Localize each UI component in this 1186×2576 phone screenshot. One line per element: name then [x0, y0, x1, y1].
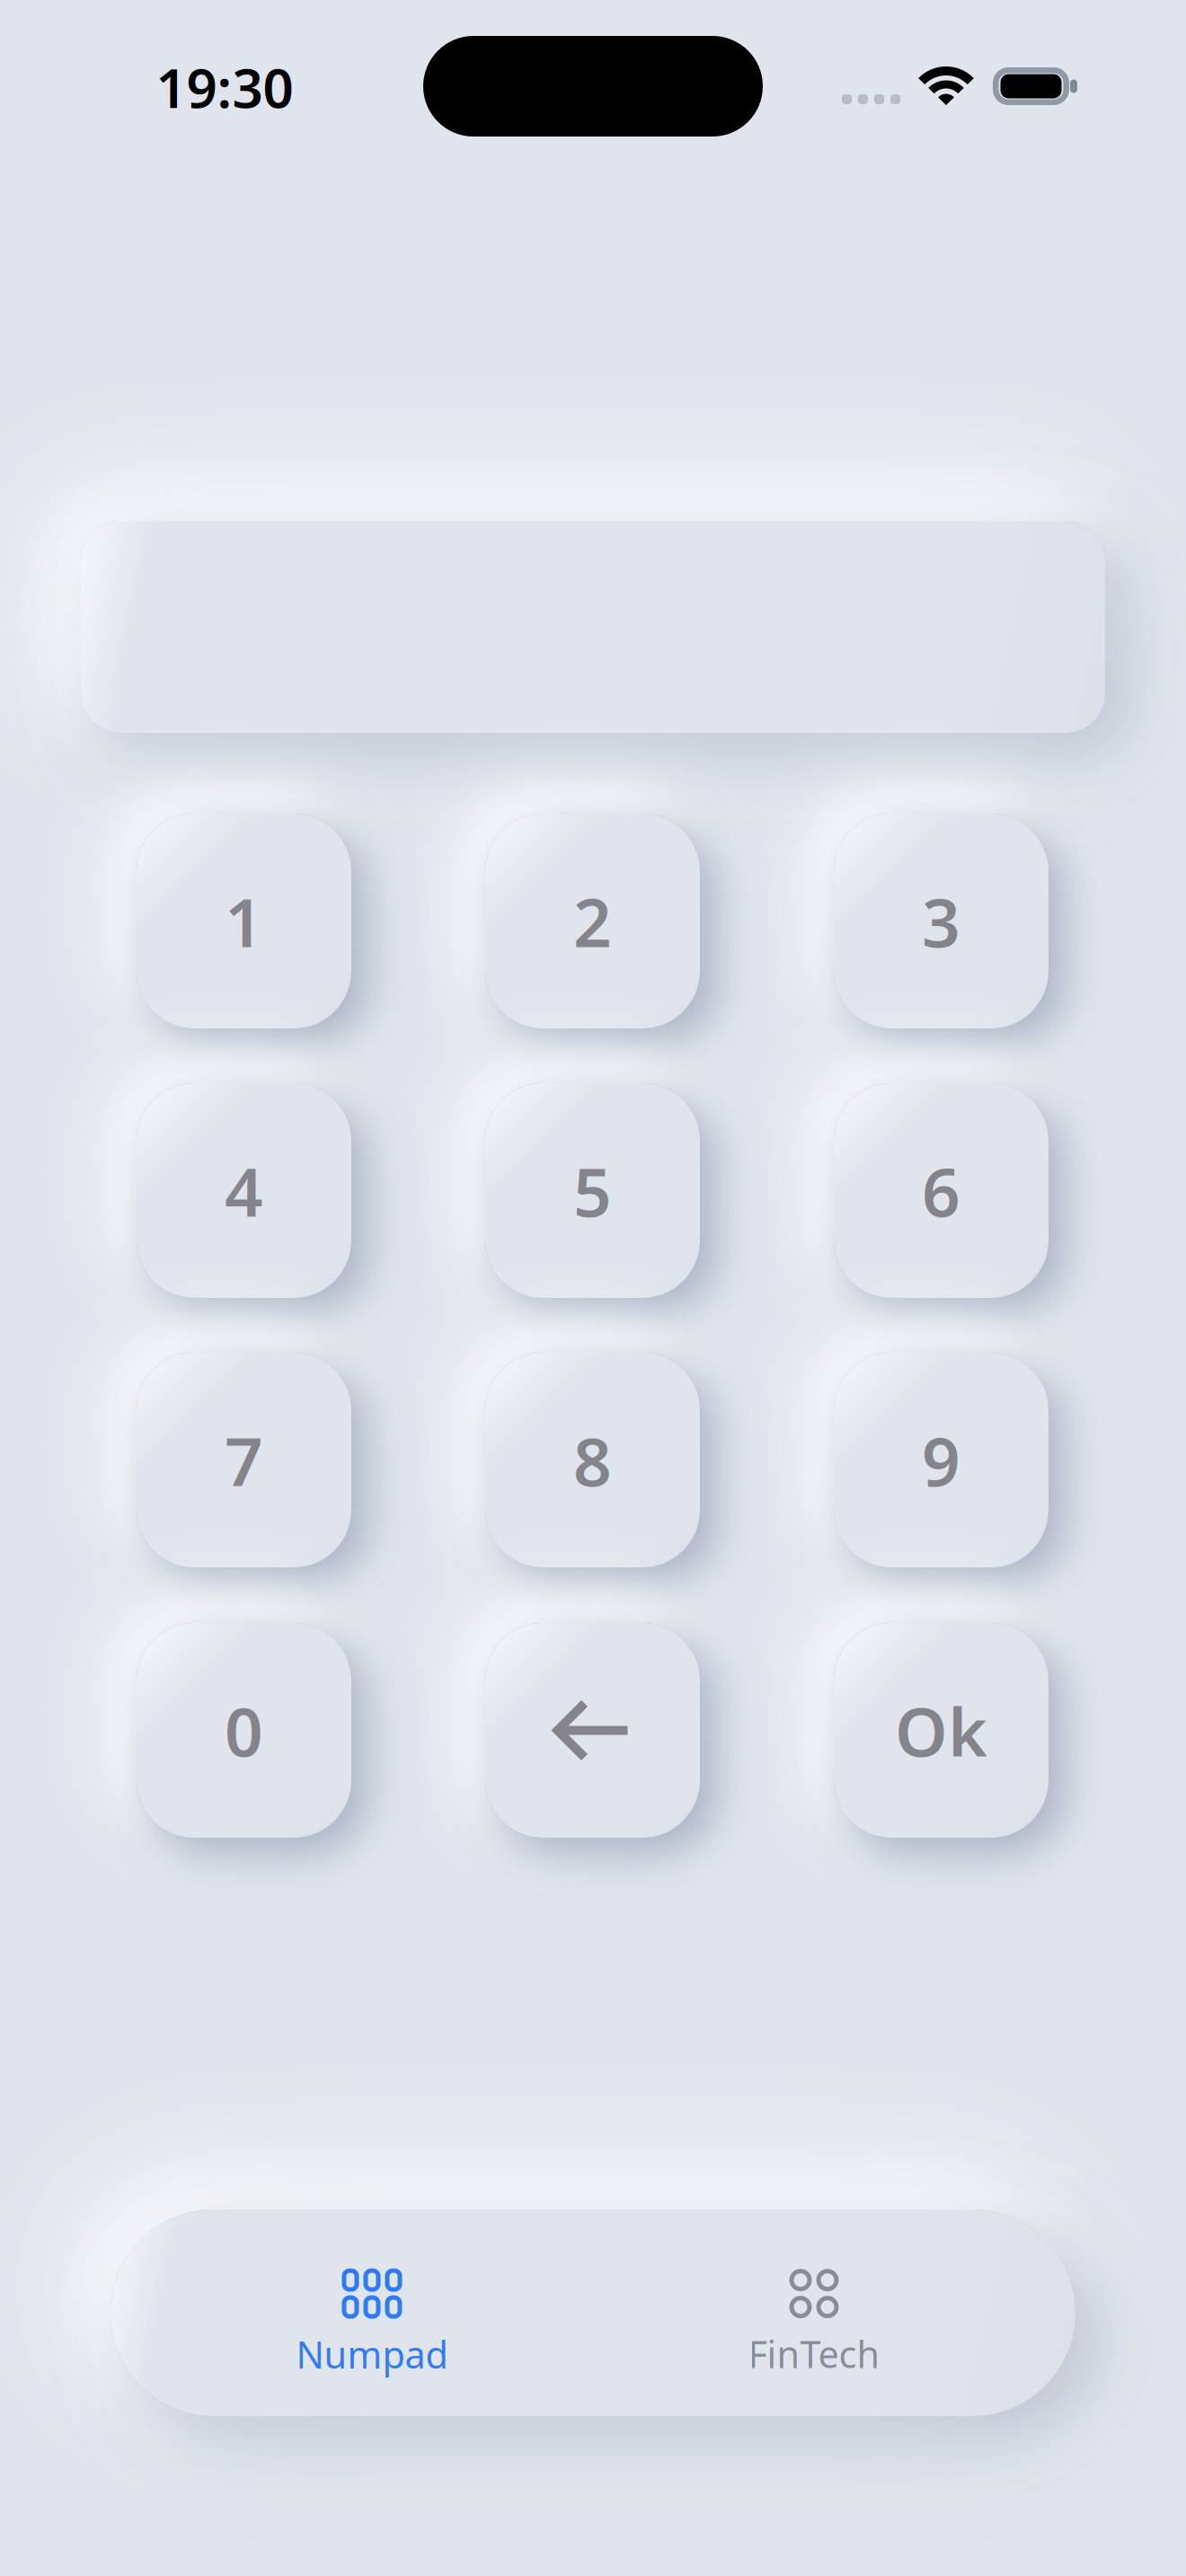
staticText: 5 [573, 1146, 612, 1235]
staticText: 3 [922, 877, 960, 966]
staticText: Numpad [296, 2330, 448, 2379]
staticText: 7 [225, 1415, 263, 1505]
button[interactable]: 9 [834, 1353, 1049, 1567]
staticText: 6 [922, 1146, 960, 1235]
staticText: 4 [225, 1146, 263, 1235]
button[interactable]: 7 [137, 1353, 351, 1567]
staticText: 0 [225, 1686, 263, 1775]
staticText: 9 [922, 1415, 960, 1505]
staticText: FinTech [748, 2329, 880, 2378]
button[interactable]: 1 [137, 814, 351, 1028]
button[interactable]: Delete [485, 1623, 700, 1838]
button[interactable]: 4 [137, 1083, 351, 1298]
button[interactable]: FinTech [625, 2234, 1003, 2413]
button[interactable]: Numpad [183, 2234, 561, 2413]
button[interactable]: 0 [137, 1623, 351, 1838]
button[interactable]: Ok [834, 1623, 1049, 1838]
button[interactable]: 3 [834, 814, 1049, 1028]
staticText: 8 [573, 1415, 612, 1505]
staticText: 19:30 [156, 51, 293, 123]
button[interactable]: 8 [485, 1353, 700, 1567]
button[interactable]: 2 [485, 814, 700, 1028]
staticText: Ok [895, 1686, 987, 1775]
button[interactable]: 5 [485, 1083, 700, 1298]
staticText: 2 [573, 877, 612, 966]
button[interactable]: 6 [834, 1083, 1049, 1298]
staticText: 1 [225, 877, 263, 966]
